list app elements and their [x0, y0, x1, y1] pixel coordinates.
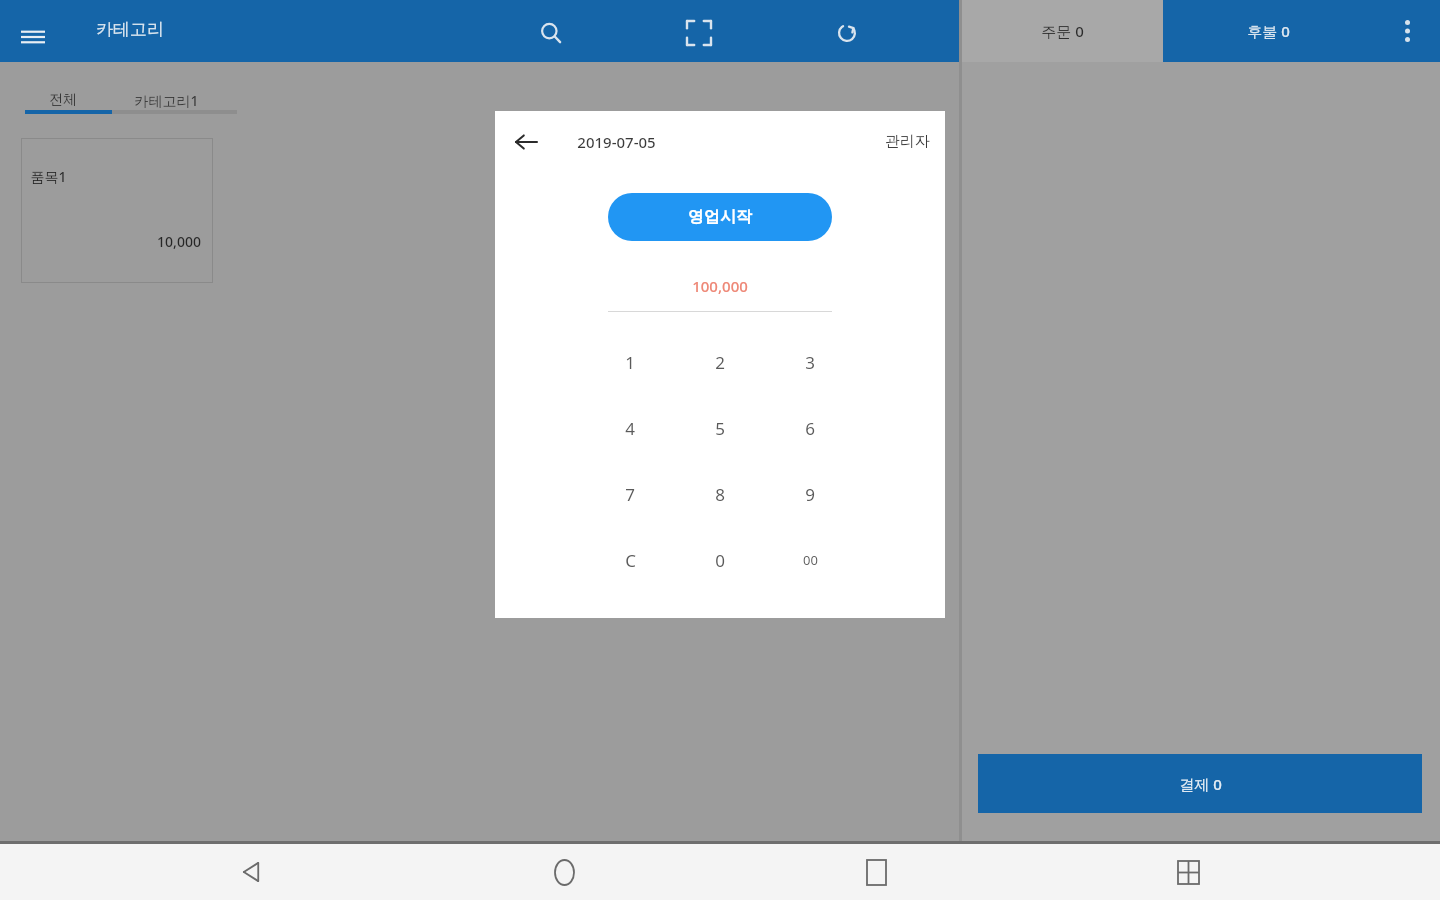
- button[interactable]: Back: [192, 844, 312, 900]
- button[interactable]: 1: [585, 329, 675, 395]
- button[interactable]: C: [585, 527, 675, 593]
- staticText: 전체: [49, 91, 77, 109]
- button[interactable]: Search: [528, 10, 574, 56]
- button[interactable]: Scan: [676, 10, 722, 56]
- staticText: 4: [625, 417, 635, 440]
- button[interactable]: Recent apps: [816, 844, 936, 900]
- staticText: 결제 0: [1179, 774, 1222, 794]
- button[interactable]: Back: [505, 121, 547, 163]
- button[interactable]: 품목1: [21, 138, 213, 283]
- button[interactable]: 00: [765, 527, 855, 593]
- button[interactable]: Multi window: [1128, 844, 1248, 900]
- staticText: 2019-07-05: [577, 132, 656, 152]
- staticText: 3: [805, 351, 815, 374]
- button[interactable]: 4: [585, 395, 675, 461]
- staticText: 영업시작: [688, 207, 752, 227]
- button[interactable]: 결제 0: [978, 754, 1422, 813]
- button[interactable]: 5: [675, 395, 765, 461]
- staticText: 품목1: [30, 167, 67, 186]
- button[interactable]: 0: [675, 527, 765, 593]
- staticText: 100,000: [692, 276, 748, 296]
- button[interactable]: 주문 0: [962, 0, 1163, 62]
- staticText: 6: [805, 417, 815, 440]
- button[interactable]: 8: [675, 461, 765, 527]
- button[interactable]: 영업시작: [608, 193, 832, 241]
- staticText: 7: [625, 483, 635, 506]
- button[interactable]: 7: [585, 461, 675, 527]
- button[interactable]: 9: [765, 461, 855, 527]
- button[interactable]: 3: [765, 329, 855, 395]
- staticText: 1: [625, 351, 635, 374]
- staticText: 5: [715, 417, 725, 440]
- button[interactable]: Menu: [10, 14, 56, 60]
- staticText: 주문 0: [1041, 21, 1084, 41]
- button[interactable]: Refresh: [824, 10, 870, 56]
- staticText: 10,000: [157, 232, 201, 251]
- button[interactable]: Home: [504, 844, 624, 900]
- staticText: 0: [715, 549, 725, 572]
- staticText: 관리자: [885, 132, 930, 151]
- staticText: 9: [805, 483, 815, 506]
- staticText: 후불 0: [1247, 21, 1290, 41]
- button[interactable]: 후불 0: [1163, 0, 1440, 62]
- staticText: 카테고리: [96, 19, 164, 40]
- staticText: 8: [715, 483, 725, 506]
- button[interactable]: 2: [675, 329, 765, 395]
- button[interactable]: More options: [1374, 0, 1440, 62]
- staticText: 카테고리1: [134, 91, 199, 110]
- button[interactable]: 6: [765, 395, 855, 461]
- staticText: 00: [803, 551, 818, 569]
- staticText: C: [625, 549, 636, 572]
- staticText: 2: [715, 351, 725, 374]
